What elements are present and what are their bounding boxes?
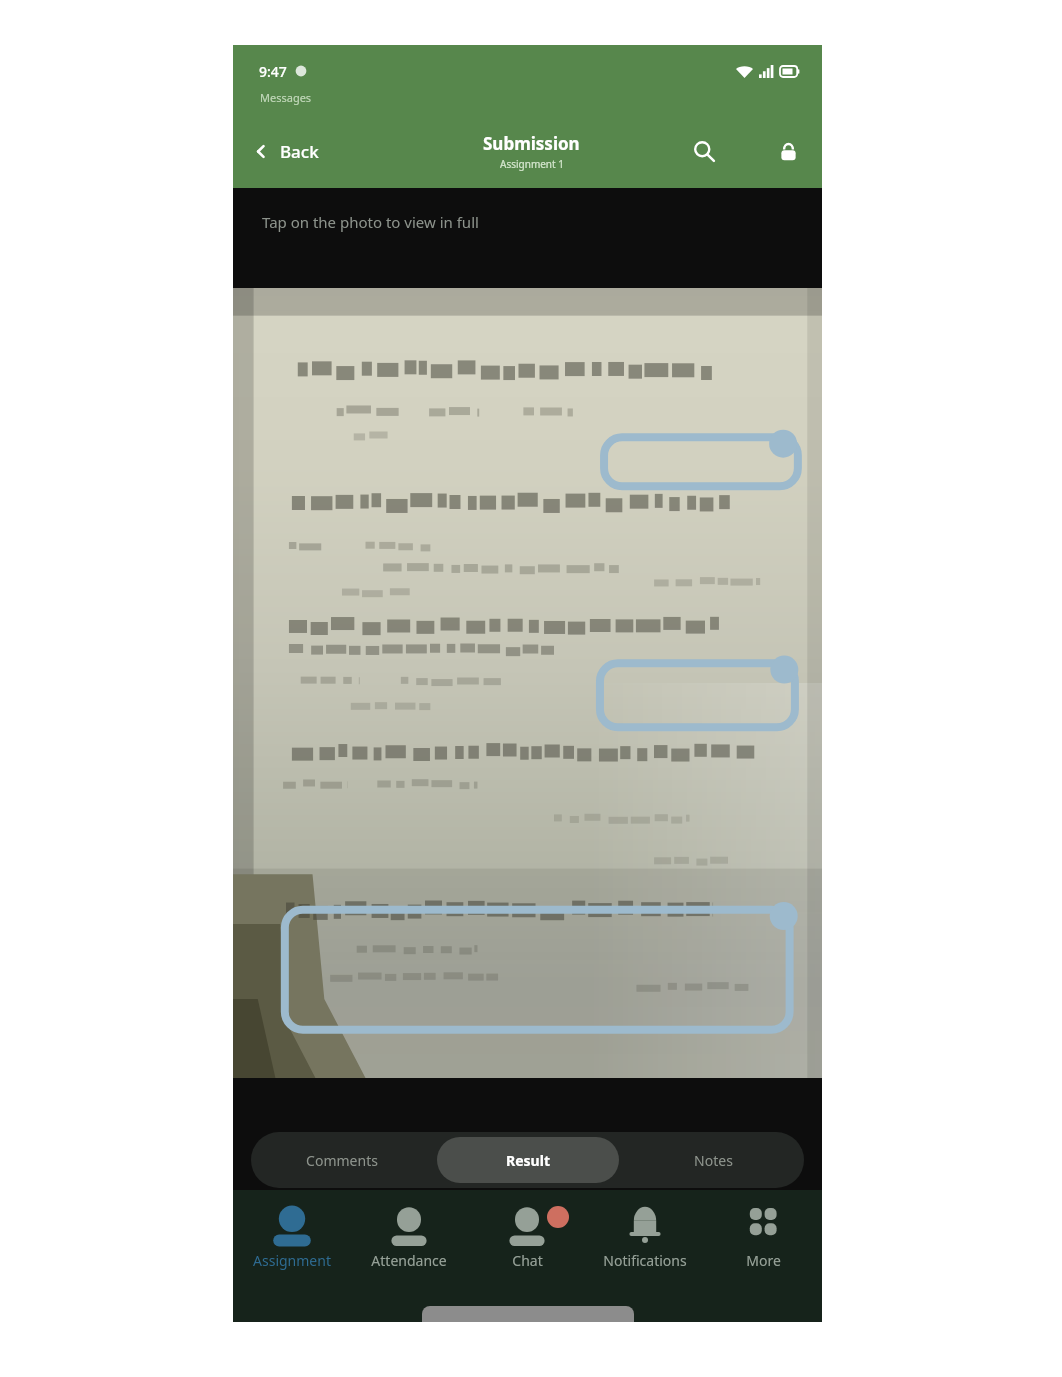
staticText: Notes: [694, 1151, 733, 1170]
staticText: Result: [506, 1151, 550, 1170]
staticText: Comments: [306, 1151, 378, 1170]
button[interactable]: Assignment: [233, 1204, 350, 1292]
button[interactable]: Chat: [468, 1204, 586, 1292]
staticText: Messages: [260, 90, 312, 105]
staticText: Submission: [483, 132, 580, 155]
button[interactable]: Notes: [627, 1137, 800, 1183]
button[interactable]: Comments: [255, 1137, 429, 1183]
staticText: Assignment 1: [500, 157, 564, 171]
button[interactable]: Notifications: [586, 1204, 704, 1292]
button[interactable]: Lock: [768, 131, 808, 171]
button[interactable]: Result: [437, 1137, 619, 1183]
staticText: Chat: [512, 1251, 543, 1270]
button[interactable]: Tap on the photo to view in full: [262, 212, 479, 232]
staticText: Attendance: [371, 1251, 447, 1270]
staticText: Notifications: [603, 1251, 687, 1270]
button[interactable]: Search: [684, 131, 724, 171]
button[interactable]: Attendance: [350, 1204, 468, 1292]
staticText: More: [746, 1251, 781, 1270]
staticText: Assignment: [253, 1251, 331, 1270]
button[interactable]: [233, 288, 822, 1078]
button[interactable]: Back: [245, 132, 327, 171]
button[interactable]: More: [704, 1204, 822, 1292]
staticText: Back: [280, 140, 319, 163]
staticText: 9:47: [259, 62, 287, 81]
